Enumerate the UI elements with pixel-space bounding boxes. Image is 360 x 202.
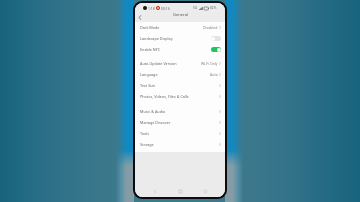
- staticText: Auto-Update Version: [140, 61, 177, 66]
- staticText: 82%: [210, 6, 217, 10]
- button[interactable]: Recents: [201, 187, 209, 195]
- button[interactable]: Dark Mode: [135, 22, 225, 33]
- staticText: Text Size: [140, 83, 156, 88]
- button[interactable]: Back: [151, 187, 159, 195]
- button[interactable]: Photos, Videos, Files & Calls: [135, 91, 225, 102]
- staticText: Storage: [140, 142, 154, 147]
- staticText: Disabled: [203, 25, 218, 30]
- button[interactable]: Language: [135, 69, 225, 80]
- button[interactable]: Manage Discover: [135, 117, 225, 128]
- button[interactable]: Text Size: [135, 80, 225, 91]
- button[interactable]: Enable NFC: [135, 44, 225, 55]
- button[interactable]: Home: [176, 187, 184, 195]
- staticText: Enable NFC: [140, 47, 161, 52]
- staticText: Manage Discover: [140, 120, 171, 125]
- staticText: 5G: [193, 6, 198, 10]
- staticText: Landscape Display: [140, 36, 173, 41]
- staticText: General: [173, 12, 188, 17]
- button[interactable]: Landscape Display: [135, 33, 225, 44]
- button[interactable]: Music & Audio: [135, 106, 225, 117]
- staticText: Music & Audio: [140, 109, 166, 114]
- staticText: 1:18: [148, 6, 155, 11]
- button[interactable]: Back: [135, 13, 144, 22]
- staticText: Dark Mode: [140, 25, 160, 30]
- button[interactable]: Tools: [135, 128, 225, 139]
- button[interactable]: Auto-Update Version: [135, 58, 225, 69]
- staticText: Tools: [140, 131, 150, 136]
- staticText: Auto: [210, 72, 218, 77]
- staticText: Wi-Fi Only: [201, 61, 218, 66]
- staticText: Photos, Videos, Files & Calls: [140, 94, 189, 99]
- staticText: Language: [140, 72, 158, 77]
- staticText: 00:16: [161, 6, 170, 11]
- button[interactable]: Storage: [135, 139, 225, 150]
